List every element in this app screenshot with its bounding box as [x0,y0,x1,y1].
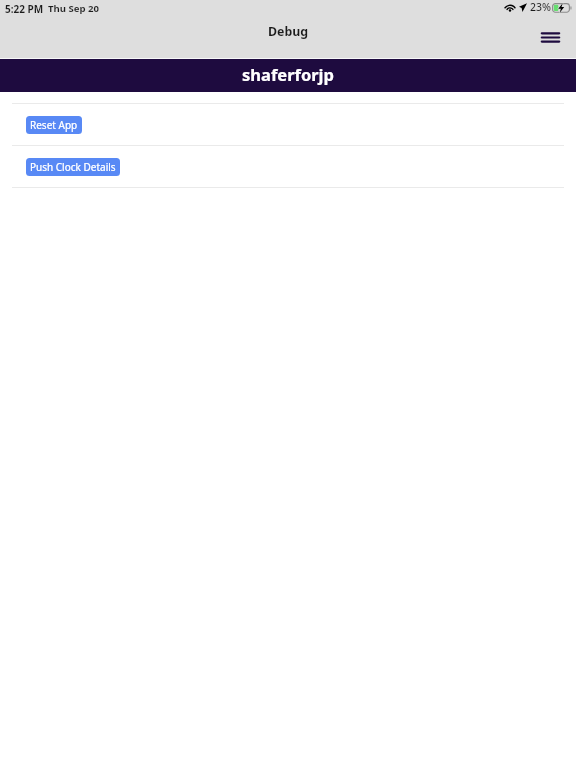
staticText: 5:22 PM [5,2,44,16]
staticText: 23% [530,0,551,14]
button[interactable]: Reset App [26,116,82,134]
staticText: shaferforjp [242,63,334,85]
staticText: Push Clock Details [30,160,116,174]
button[interactable]: Push Clock Details [26,158,120,176]
staticText: Reset App [30,118,78,132]
button[interactable]: Open navigation menu [533,23,568,51]
staticText: Debug [268,23,309,40]
staticText: Thu Sep 20 [48,2,100,15]
